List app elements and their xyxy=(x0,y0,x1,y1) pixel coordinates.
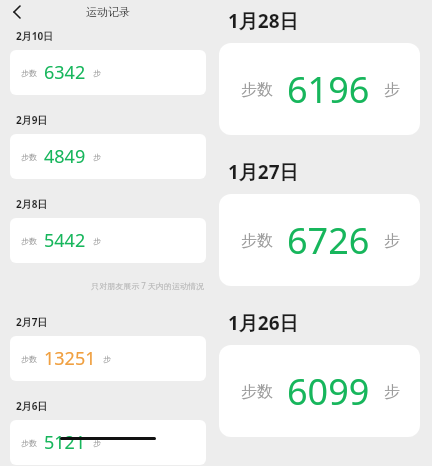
button[interactable]: 步数 xyxy=(219,345,420,437)
staticText: 6342 xyxy=(44,60,86,85)
staticText: 步数 xyxy=(21,68,37,78)
button[interactable]: 步数 xyxy=(10,134,206,179)
staticText: 步数 xyxy=(241,80,273,100)
staticText: 2月7日 xyxy=(16,315,48,329)
staticText: 步 xyxy=(93,438,101,448)
staticText: 2月9日 xyxy=(16,113,48,127)
staticText: 步数 xyxy=(21,152,37,162)
staticText: 1月26日 xyxy=(228,310,299,336)
button[interactable]: 步数 xyxy=(10,218,206,263)
staticText: 步数 xyxy=(241,231,273,251)
staticText: 步 xyxy=(103,354,111,364)
staticText: 5121 xyxy=(44,430,86,455)
staticText: 6196 xyxy=(287,65,370,114)
staticText: 4849 xyxy=(44,144,86,169)
staticText: 13251 xyxy=(44,346,96,371)
staticText: 运动记录 xyxy=(86,5,130,19)
staticText: 2月8日 xyxy=(16,197,48,211)
staticText: 只对朋友展示 7 天内的运动情况 xyxy=(0,280,204,291)
button[interactable]: 步数 xyxy=(219,194,420,286)
staticText: 步 xyxy=(384,231,400,251)
staticText: 5442 xyxy=(44,228,86,253)
staticText: 步 xyxy=(93,236,101,246)
staticText: 步 xyxy=(384,382,400,402)
staticText: 步数 xyxy=(241,382,273,402)
staticText: 1月27日 xyxy=(228,159,299,185)
button[interactable]: 步数 xyxy=(219,43,420,135)
button[interactable]: 步数 xyxy=(10,50,206,95)
staticText: 6099 xyxy=(287,367,370,416)
staticText: 步 xyxy=(93,152,101,162)
staticText: 1月28日 xyxy=(228,8,299,34)
button[interactable]: 步数 xyxy=(10,420,206,465)
staticText: 步 xyxy=(93,68,101,78)
staticText: 步数 xyxy=(21,438,37,448)
staticText: 2月6日 xyxy=(16,399,48,413)
button[interactable]: Back xyxy=(6,1,28,23)
staticText: 步数 xyxy=(21,236,37,246)
staticText: 2月10日 xyxy=(16,29,54,43)
staticText: 步 xyxy=(384,80,400,100)
staticText: 6726 xyxy=(287,216,370,265)
button[interactable]: 步数 xyxy=(10,336,206,381)
staticText: 步数 xyxy=(21,354,37,364)
